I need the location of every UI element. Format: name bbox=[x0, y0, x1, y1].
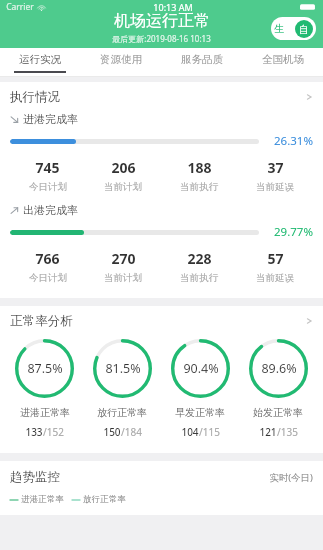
staticText: 当前延误 bbox=[256, 181, 294, 193]
staticText: 206 bbox=[111, 158, 136, 177]
staticText: 121 bbox=[259, 425, 277, 439]
staticText: /184 bbox=[121, 425, 142, 439]
staticText: 执行情况 bbox=[10, 89, 60, 105]
staticText: /135 bbox=[277, 425, 298, 439]
staticText: 放行正常率 bbox=[97, 406, 147, 419]
staticText: 57 bbox=[267, 249, 284, 268]
staticText: 自 bbox=[299, 23, 309, 36]
staticText: 745 bbox=[35, 158, 60, 177]
other: More bbox=[305, 93, 313, 101]
button[interactable]: 89.6% bbox=[239, 338, 317, 439]
staticText: 当前延误 bbox=[256, 272, 294, 284]
staticText: 37 bbox=[267, 158, 284, 177]
staticText: 26.31% bbox=[274, 133, 313, 149]
staticText: 今日计划 bbox=[29, 272, 67, 284]
staticText: 出港完成率 bbox=[23, 203, 78, 217]
staticText: 运行实况 bbox=[19, 53, 61, 66]
staticText: 当前计划 bbox=[104, 272, 142, 284]
staticText: 早发正常率 bbox=[175, 406, 225, 419]
button[interactable]: 87.5% bbox=[6, 338, 83, 439]
staticText: 90.4% bbox=[183, 360, 219, 377]
staticText: 实时(今日) bbox=[269, 471, 313, 484]
staticText: 150 bbox=[103, 425, 121, 439]
staticText: /115 bbox=[199, 425, 220, 439]
staticText: 87.5% bbox=[27, 360, 63, 377]
staticText: 104 bbox=[181, 425, 199, 439]
staticText: 10:13 AM bbox=[153, 1, 193, 13]
staticText: 89.6% bbox=[261, 360, 297, 377]
staticText: 进港正常率 bbox=[21, 494, 64, 505]
staticText: 资源使用 bbox=[100, 53, 142, 66]
staticText: 服务品质 bbox=[181, 53, 223, 66]
staticText: 全国机场 bbox=[262, 53, 304, 66]
staticText: 进港正常率 bbox=[20, 406, 70, 419]
button[interactable]: 全国机场 bbox=[242, 48, 323, 77]
staticText: 81.5% bbox=[105, 360, 141, 377]
button[interactable]: 运行实况 bbox=[0, 48, 80, 77]
staticText: 放行正常率 bbox=[83, 494, 126, 505]
staticText: 29.77% bbox=[274, 224, 313, 240]
staticText: 当前执行 bbox=[180, 272, 218, 284]
staticText: 生 bbox=[274, 22, 284, 35]
staticText: 当前计划 bbox=[104, 181, 142, 193]
button[interactable]: 81.5% bbox=[83, 338, 161, 439]
staticText: 133 bbox=[25, 425, 43, 439]
staticText: 今日计划 bbox=[29, 181, 67, 193]
button[interactable]: 资源使用 bbox=[80, 48, 161, 77]
staticText: 进港完成率 bbox=[23, 112, 78, 126]
staticText: 始发正常率 bbox=[253, 406, 303, 419]
button[interactable]: 正常率分析 bbox=[0, 306, 323, 336]
other: More bbox=[305, 317, 313, 325]
button[interactable]: 90.4% bbox=[161, 338, 239, 439]
staticText: 当前执行 bbox=[180, 181, 218, 193]
button[interactable]: 生 bbox=[271, 17, 316, 40]
button[interactable]: 执行情况 bbox=[0, 82, 323, 112]
staticText: 228 bbox=[187, 249, 212, 268]
staticText: 766 bbox=[35, 249, 60, 268]
staticText: 188 bbox=[187, 158, 212, 177]
button[interactable]: 服务品质 bbox=[161, 48, 242, 77]
staticText: Carrier bbox=[6, 1, 34, 13]
staticText: 正常率分析 bbox=[10, 313, 73, 329]
staticText: 最后更新:2019-08-16 10:13 bbox=[112, 33, 211, 44]
staticText: /152 bbox=[43, 425, 64, 439]
staticText: 趋势监控 bbox=[10, 469, 60, 485]
staticText: 270 bbox=[111, 249, 136, 268]
staticText: 机场运行正常 bbox=[114, 11, 210, 31]
